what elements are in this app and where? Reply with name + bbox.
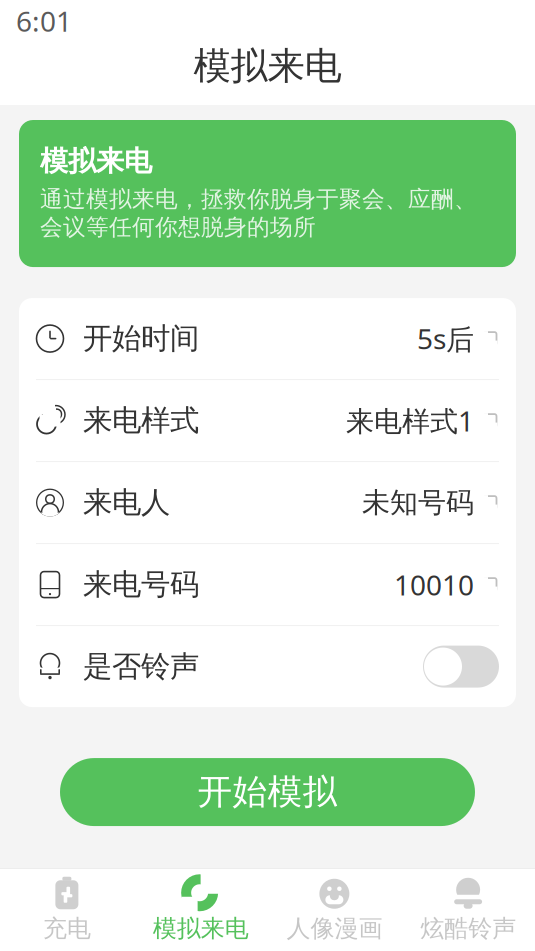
button[interactable]: 是否铃声 <box>19 626 516 707</box>
button[interactable]: 模拟来电 <box>134 869 268 951</box>
staticText: 充电 <box>43 914 91 943</box>
staticText: 开始模拟 <box>197 771 337 813</box>
staticText: 6:01 <box>16 2 72 40</box>
button[interactable]: 炫酷铃声 <box>401 869 535 951</box>
staticText: 炫酷铃声 <box>420 914 516 943</box>
staticText: 5s后 <box>417 320 474 357</box>
staticText: 未知号码 <box>362 485 474 520</box>
staticText: 是否铃声 <box>83 649 199 685</box>
button[interactable]: 来电人 <box>19 462 516 543</box>
button[interactable]: 来电样式 <box>19 380 516 461</box>
button[interactable]: 开始模拟 <box>60 758 475 826</box>
button[interactable]: 充电 <box>0 869 134 951</box>
button[interactable]: 人像漫画 <box>267 869 401 951</box>
staticText: 通过模拟来电，拯救你脱身于聚会、应酬、会议等任何你想脱身的场所 <box>40 185 477 241</box>
staticText: 模拟来电 <box>153 914 249 943</box>
staticText: 人像漫画 <box>286 914 382 943</box>
staticText: 来电样式1 <box>346 402 474 439</box>
staticText: 模拟来电 <box>40 144 152 178</box>
button[interactable]: 来电号码 <box>19 544 516 625</box>
staticText: 来电人 <box>83 485 170 521</box>
button[interactable]: 开始时间 <box>19 298 516 379</box>
staticText: 模拟来电 <box>193 43 341 89</box>
staticText: 开始时间 <box>83 321 199 357</box>
staticText: 来电号码 <box>83 567 199 603</box>
staticText: 来电样式 <box>83 403 199 439</box>
staticText: 10010 <box>394 566 474 603</box>
